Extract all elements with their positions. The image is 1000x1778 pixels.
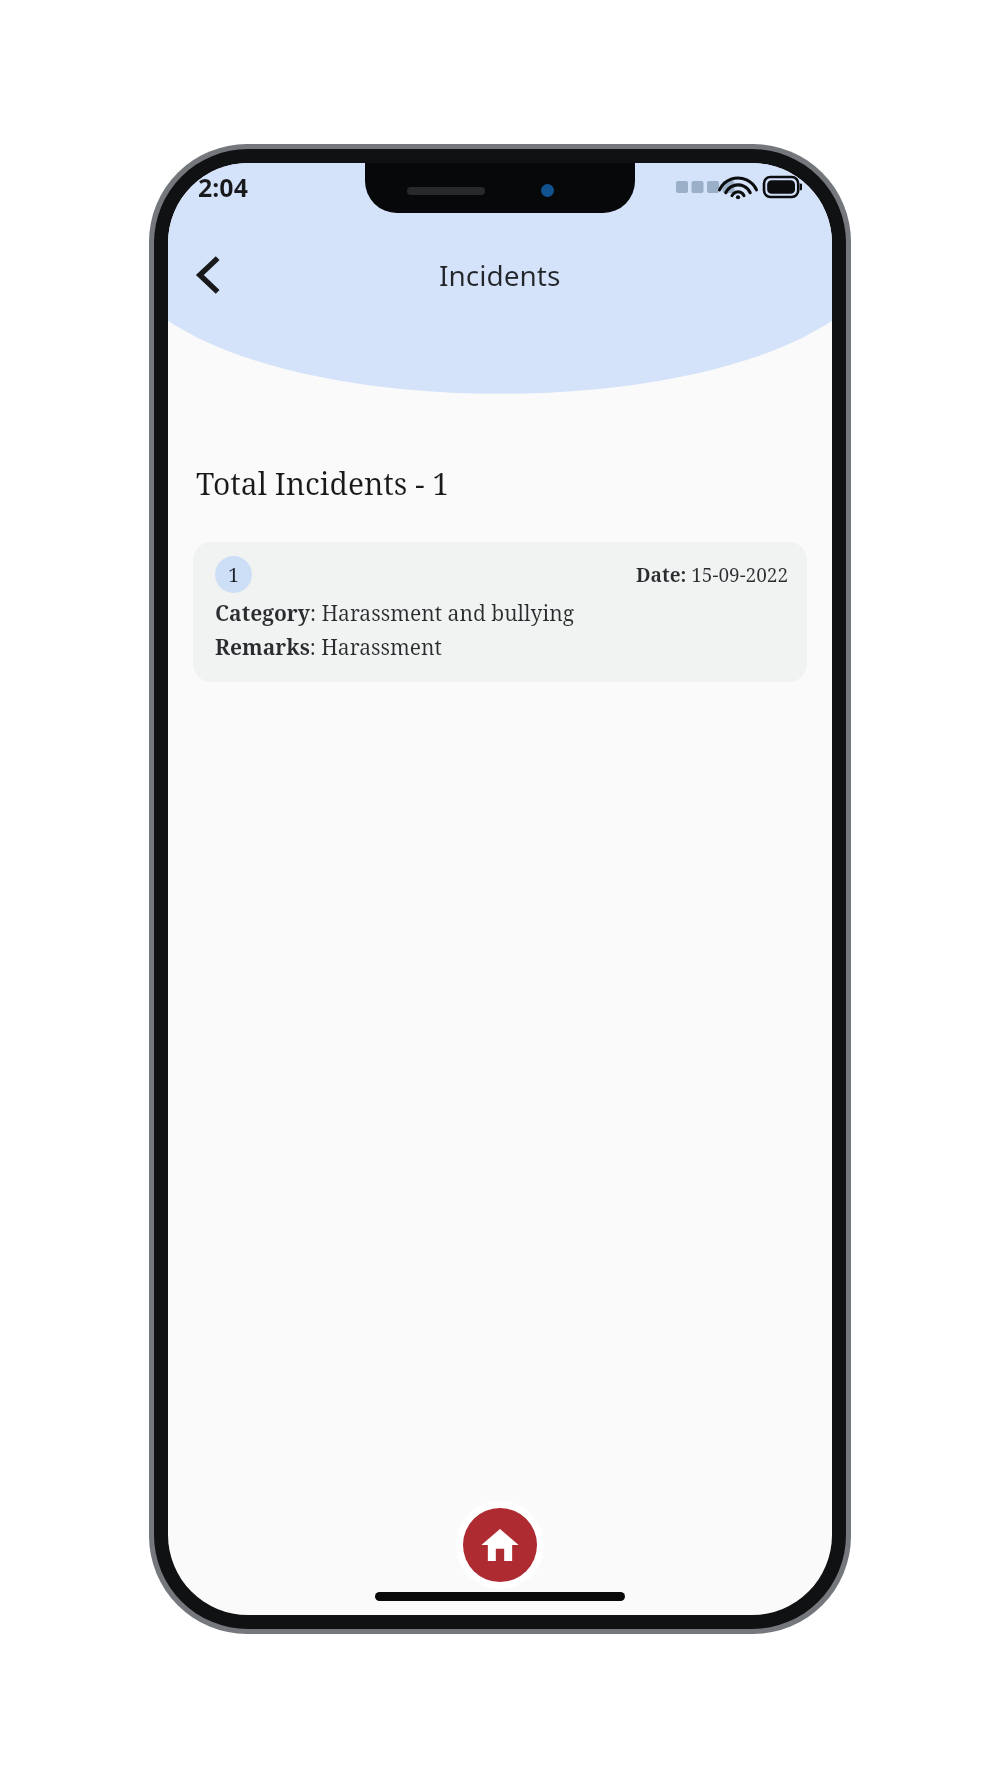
staticText: Category: Harassment and bullying: [215, 599, 575, 628]
button[interactable]: Back: [178, 245, 238, 305]
button[interactable]: Home: [463, 1508, 537, 1582]
staticText: Incidents: [439, 256, 561, 294]
staticText: Remarks: Harassment: [215, 633, 442, 662]
button[interactable]: 1: [193, 542, 807, 682]
staticText: 1: [228, 561, 240, 588]
staticText: Date: 15-09-2022: [636, 562, 789, 588]
staticText: 2:04: [198, 170, 248, 204]
staticText: Total Incidents - 1: [196, 463, 450, 504]
